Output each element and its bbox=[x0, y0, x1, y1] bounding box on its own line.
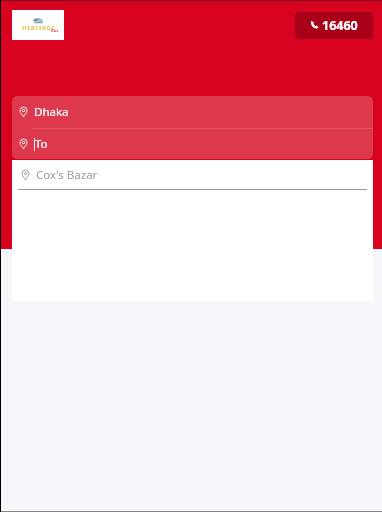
button[interactable]: Dhaka bbox=[20, 96, 373, 128]
staticText: Cox's Bazar bbox=[36, 167, 98, 183]
staticText: To bbox=[35, 136, 48, 152]
staticText: Bus bbox=[51, 28, 59, 33]
staticText: HERITAGE bbox=[22, 24, 56, 32]
button[interactable]: Call 16460 bbox=[295, 12, 373, 39]
button[interactable]: Cox's Bazar bbox=[22, 160, 373, 190]
staticText: Dhaka bbox=[34, 104, 69, 120]
button[interactable]: To bbox=[20, 129, 373, 159]
button[interactable]: Heritage logo bbox=[12, 10, 64, 40]
staticText: 16460 bbox=[322, 17, 358, 34]
